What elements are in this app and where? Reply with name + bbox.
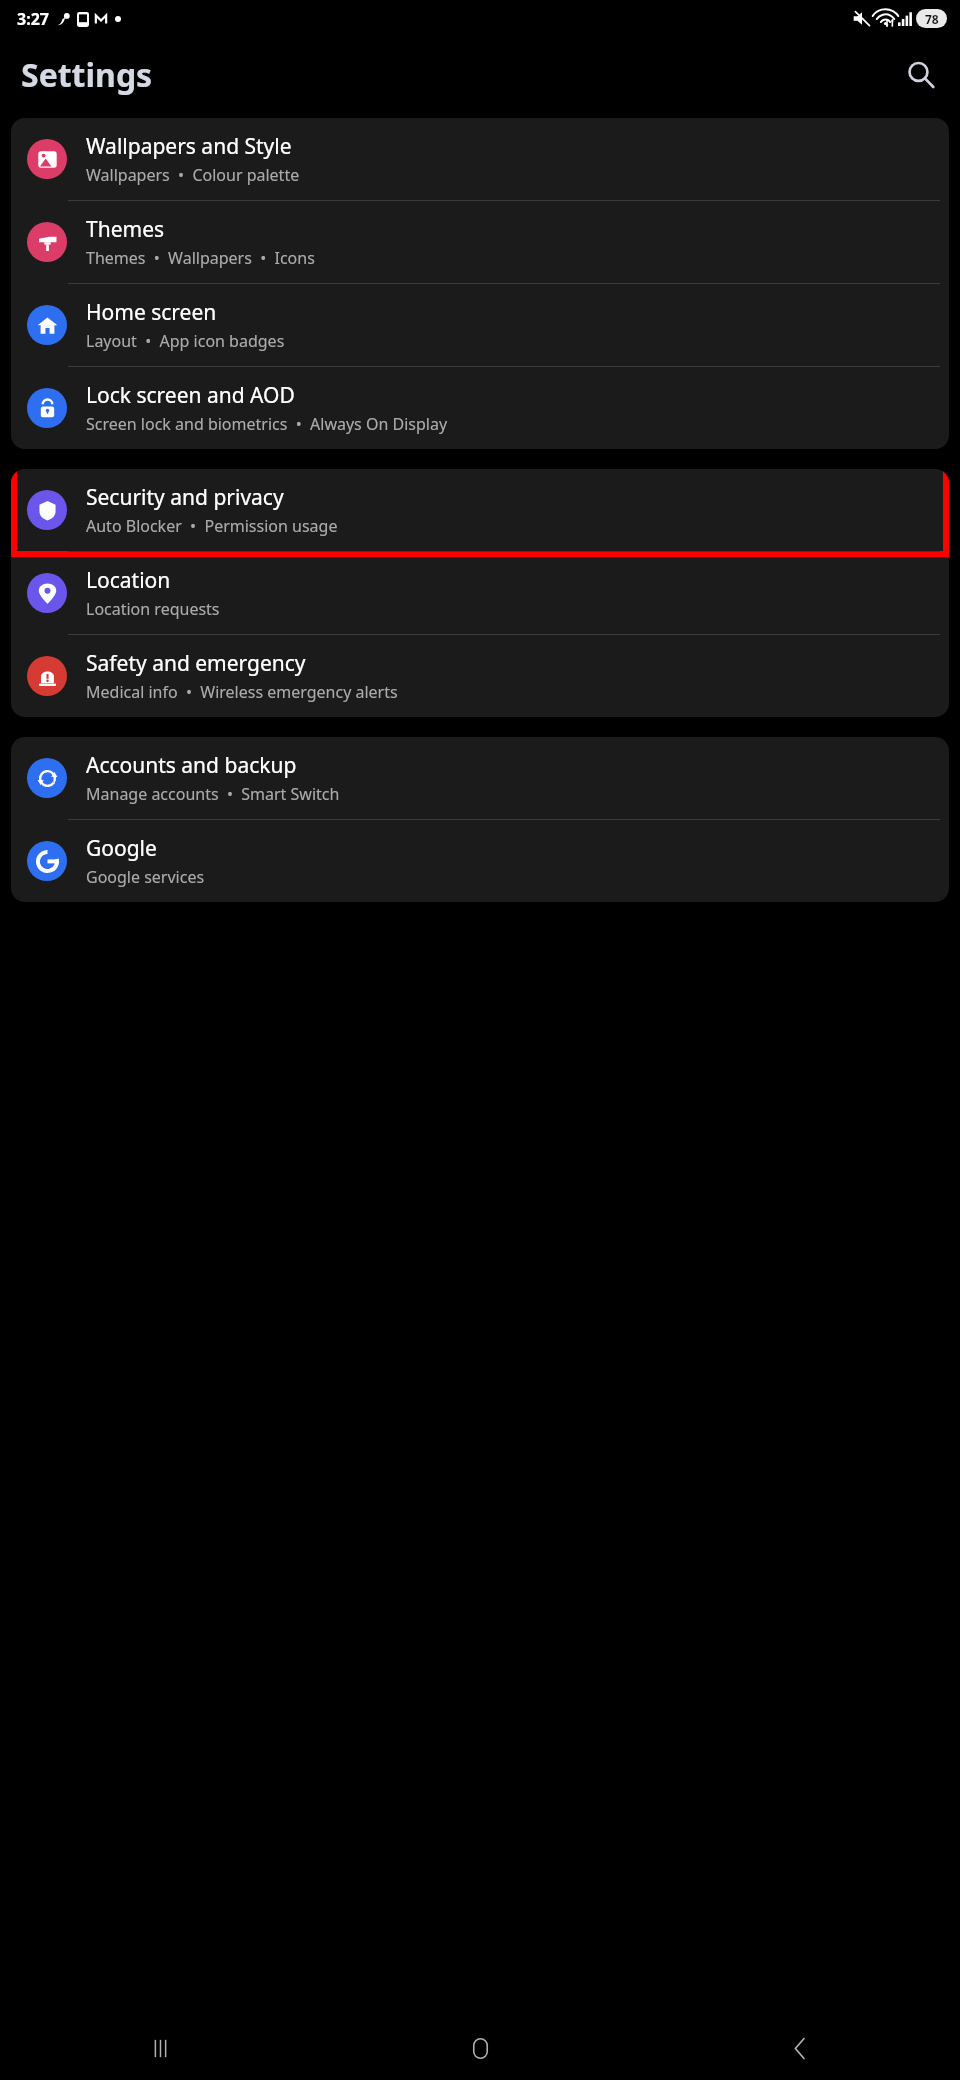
button[interactable]: Wallpapers and Style xyxy=(11,118,949,200)
button[interactable]: Location xyxy=(11,552,949,634)
staticText: Auto Blocker • Permission usage xyxy=(86,515,338,537)
staticText: Themes • Wallpapers • Icons xyxy=(86,247,315,269)
button[interactable]: Home screen xyxy=(11,284,949,366)
staticText: Location requests xyxy=(86,598,220,620)
staticText: Location xyxy=(86,566,171,595)
staticText: 78 xyxy=(925,11,939,27)
staticText: Safety and emergency xyxy=(86,649,306,678)
staticText: Wallpapers • Colour palette xyxy=(86,164,300,186)
staticText: Manage accounts • Smart Switch xyxy=(86,783,340,805)
staticText: Themes xyxy=(86,215,165,244)
button[interactable]: Home xyxy=(320,2016,640,2080)
button[interactable]: Safety and emergency xyxy=(11,635,949,717)
staticText: Medical info • Wireless emergency alerts xyxy=(86,681,398,703)
staticText: 3:27 xyxy=(17,8,49,30)
staticText: Home screen xyxy=(86,298,217,327)
button[interactable]: Security and privacy xyxy=(11,469,949,551)
staticText: Wallpapers and Style xyxy=(86,132,292,161)
button[interactable]: Google xyxy=(11,820,949,902)
button[interactable]: Lock screen and AOD xyxy=(11,367,949,449)
button[interactable]: Accounts and backup xyxy=(11,737,949,819)
staticText: Screen lock and biometrics • Always On D… xyxy=(86,413,448,435)
staticText: Security and privacy xyxy=(86,483,284,512)
staticText: Google services xyxy=(86,866,205,888)
staticText: Accounts and backup xyxy=(86,751,297,780)
button[interactable]: Themes xyxy=(11,201,949,283)
staticText: Google xyxy=(86,834,157,863)
staticText: Lock screen and AOD xyxy=(86,381,295,410)
staticText: Settings xyxy=(21,53,153,97)
button[interactable]: Search xyxy=(894,48,948,102)
button[interactable]: Back xyxy=(640,2016,960,2080)
button[interactable]: Recent apps xyxy=(0,2016,320,2080)
staticText: Layout • App icon badges xyxy=(86,330,285,352)
